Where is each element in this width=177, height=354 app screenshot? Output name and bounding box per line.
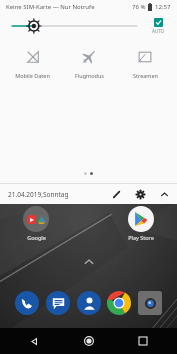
staticText: Play Store — [128, 234, 154, 241]
button[interactable]: Mobile Daten — [4, 45, 61, 83]
staticText: 21.04.2019,Sonntag — [8, 190, 69, 199]
staticText: 12:57 — [155, 3, 171, 11]
staticText: Keine SIM-Karte — Nur Notrufe — [6, 3, 95, 11]
button[interactable]: Settings — [133, 187, 147, 201]
button[interactable]: Recents — [123, 328, 163, 354]
button[interactable]: Contacts — [74, 288, 104, 318]
button[interactable]: Home — [69, 328, 109, 354]
button[interactable]: Streamen — [117, 45, 173, 83]
staticText: Mobile Daten — [15, 72, 50, 79]
button[interactable]: Open app drawer — [79, 252, 99, 272]
button[interactable]: Phone — [12, 288, 42, 318]
staticText: Google — [27, 234, 46, 241]
staticText: AUTO — [152, 28, 165, 34]
staticText: 76 % — [132, 3, 146, 11]
button[interactable]: Collapse — [157, 187, 171, 201]
button[interactable]: Google — [14, 206, 58, 241]
button[interactable]: Play Store — [119, 206, 163, 241]
staticText: Flugmodus — [75, 72, 104, 79]
staticText: Streamen — [133, 72, 158, 79]
button[interactable]: Messages — [43, 288, 73, 318]
button[interactable]: Camera — [135, 288, 165, 318]
button[interactable]: Flugmodus — [61, 45, 117, 83]
button[interactable]: Back — [14, 328, 54, 354]
button[interactable]: Chrome — [104, 288, 134, 318]
button[interactable]: AUTO — [147, 18, 169, 34]
button[interactable] — [12, 15, 137, 37]
button[interactable]: Edit — [109, 187, 123, 201]
